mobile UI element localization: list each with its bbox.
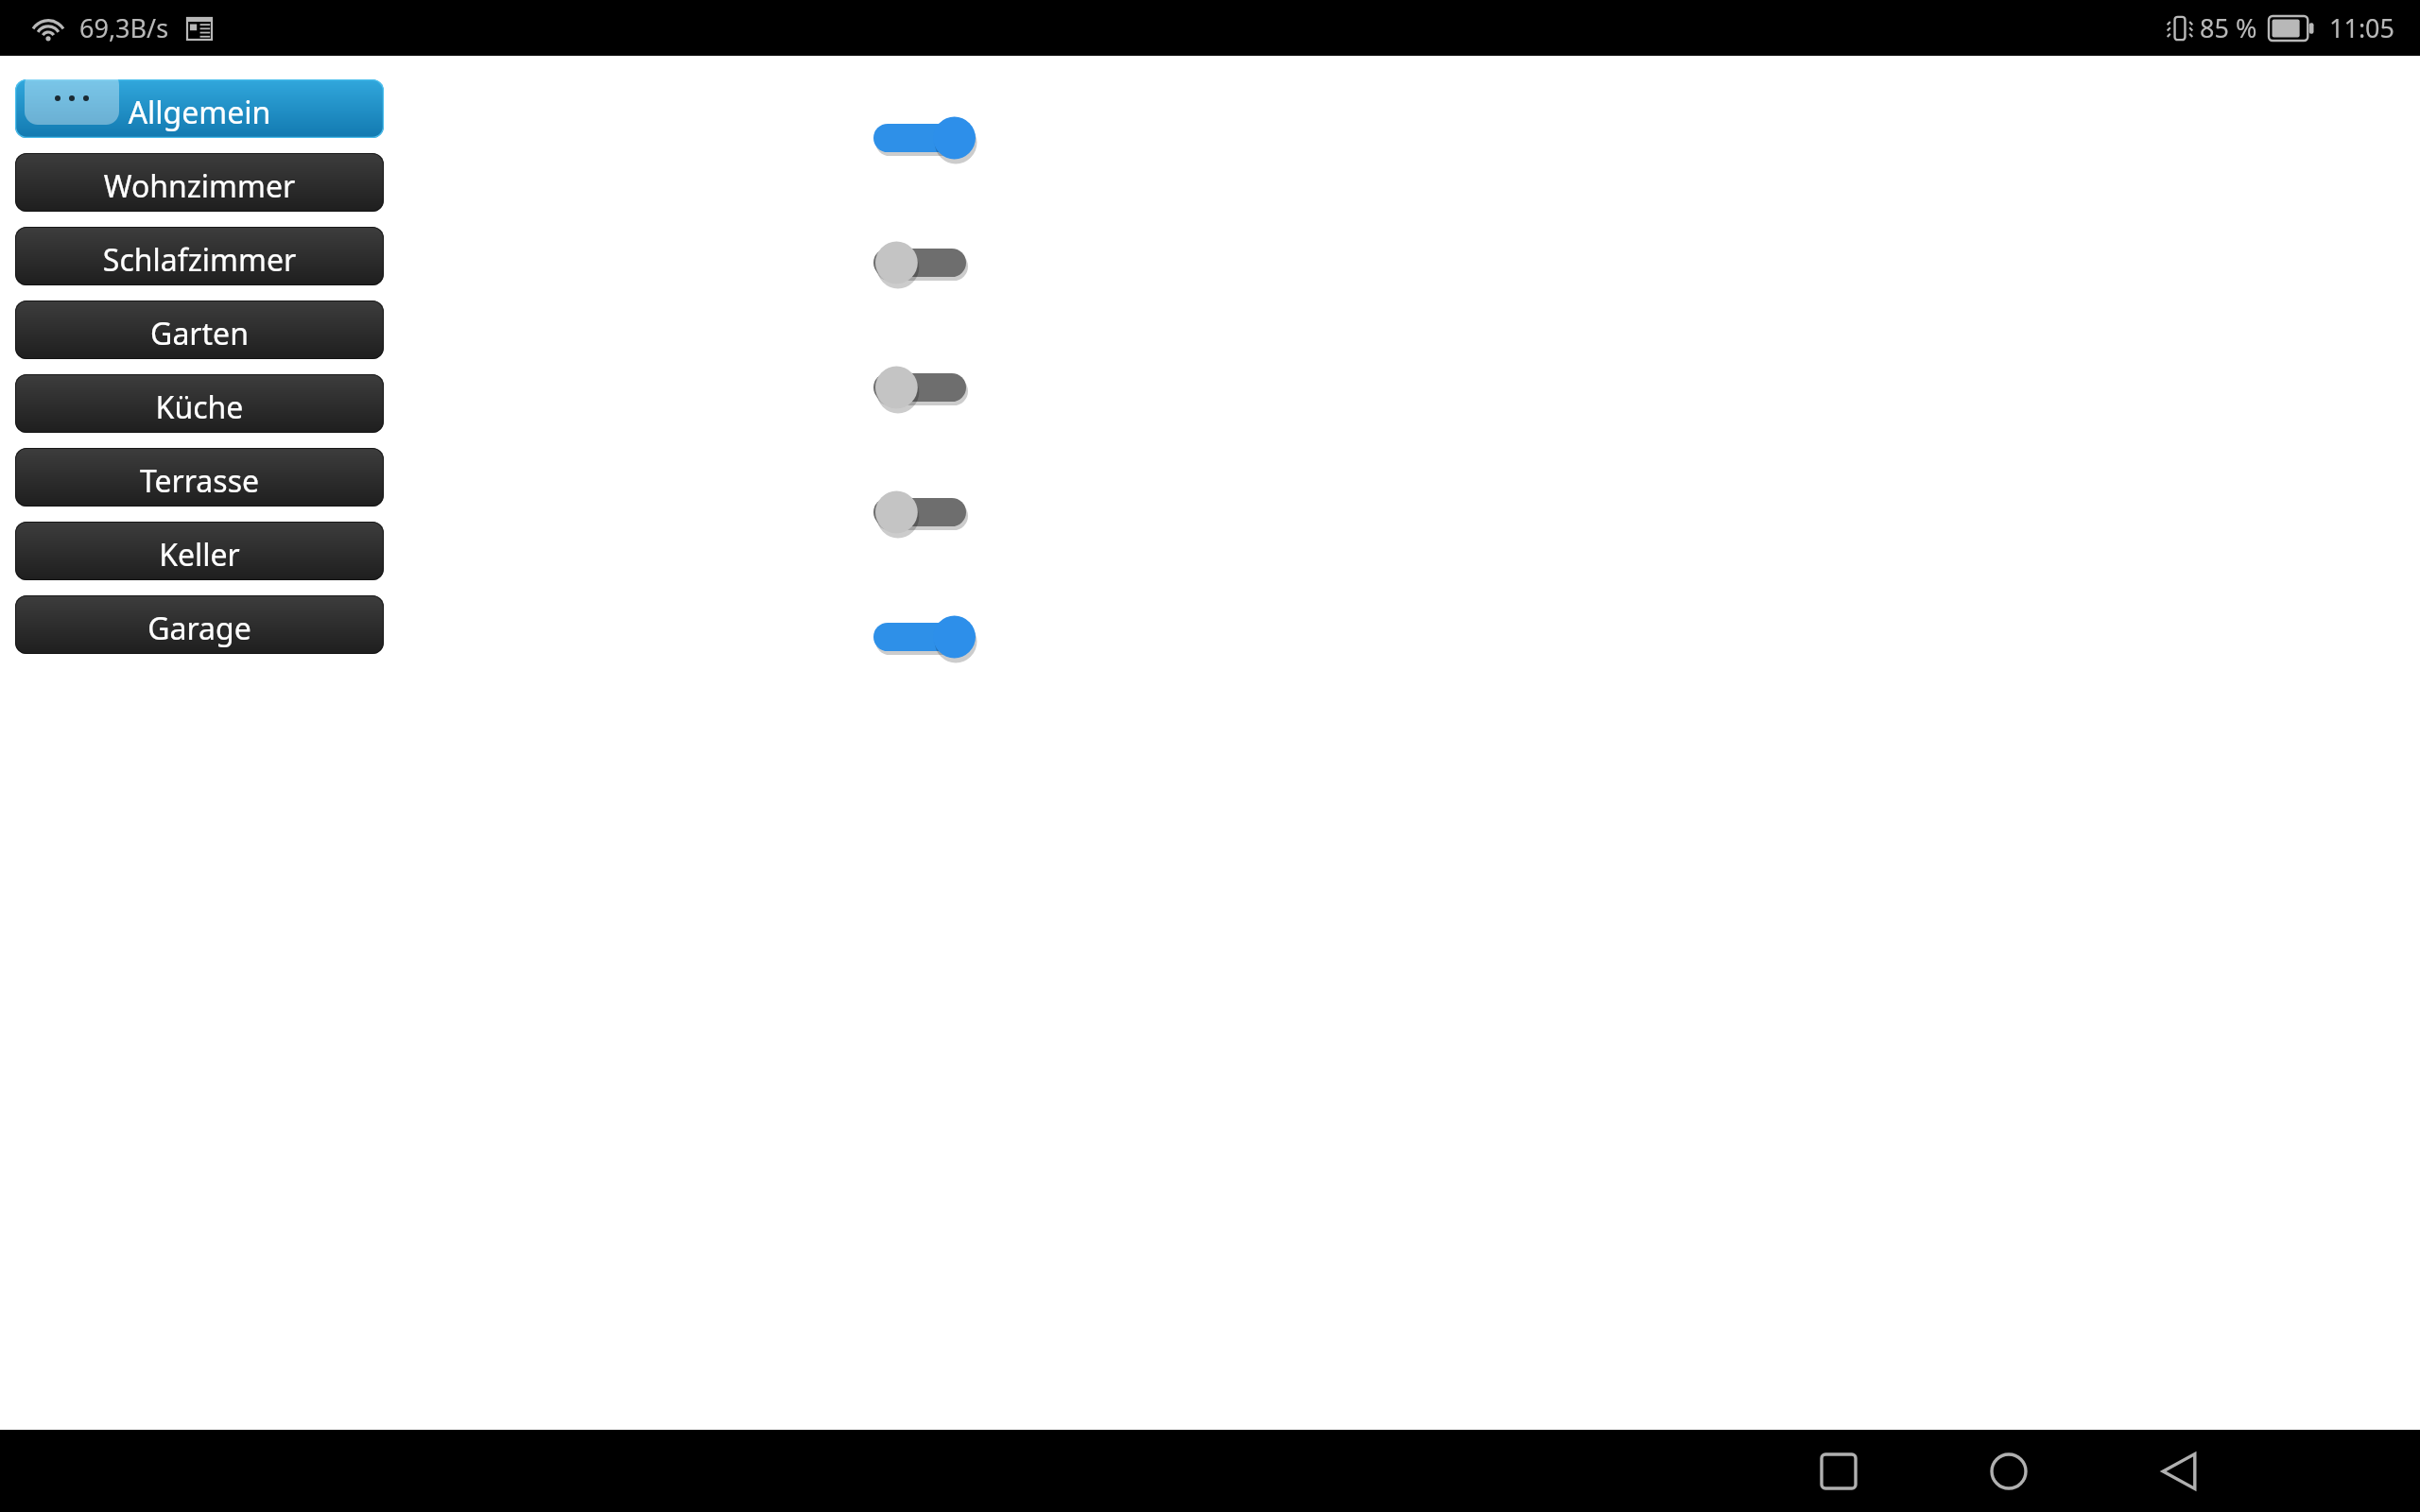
button[interactable]: Wohnzimmer <box>15 153 384 212</box>
staticText: Küche <box>15 387 384 428</box>
staticText: Schlafzimmer <box>15 239 384 281</box>
button[interactable]: Garten <box>15 301 384 359</box>
staticText: Garten <box>15 313 384 354</box>
button[interactable]: Schalter aus <box>873 236 979 289</box>
button[interactable]: Keller <box>15 522 384 580</box>
button[interactable]: Letzte Apps <box>1787 1430 1891 1512</box>
staticText: 69,3B/s <box>79 10 169 45</box>
button[interactable]: Terrasse <box>15 448 384 507</box>
staticText: Allgemein <box>15 92 384 133</box>
button[interactable]: Schlafzimmer <box>15 227 384 285</box>
button[interactable]: Schalter ein <box>873 610 979 663</box>
button[interactable]: Schalter aus <box>873 486 979 539</box>
staticText: Terrasse <box>15 460 384 502</box>
staticText: Keller <box>15 534 384 576</box>
button[interactable]: Zurück <box>2127 1430 2231 1512</box>
staticText: Garage <box>15 608 384 649</box>
button[interactable]: Garage <box>15 595 384 654</box>
button[interactable]: Allgemein <box>15 79 384 138</box>
button[interactable]: Schalter aus <box>873 361 979 414</box>
button[interactable]: Küche <box>15 374 384 433</box>
button[interactable]: Mehr Optionen <box>25 72 119 125</box>
button[interactable]: Schalter ein <box>873 112 979 164</box>
staticText: 11:05 <box>2329 10 2395 45</box>
staticText: 85 % <box>2200 10 2257 45</box>
staticText: Wohnzimmer <box>15 165 384 207</box>
button[interactable]: Startbildschirm <box>1957 1430 2061 1512</box>
